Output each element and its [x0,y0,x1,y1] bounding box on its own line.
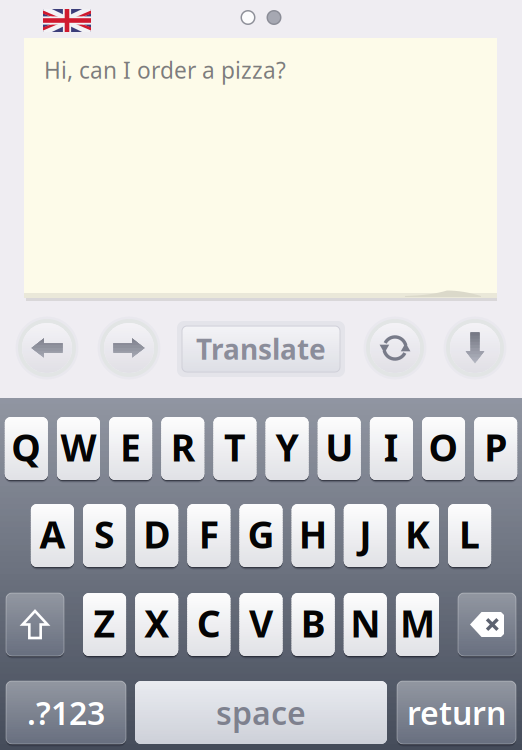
button[interactable]: Page 1 [237,6,259,28]
button[interactable]: .?123 [6,681,126,744]
button[interactable]: Page 2 [263,6,285,28]
button[interactable]: S [83,504,126,567]
staticText: C [197,598,221,648]
staticText: V [249,598,273,648]
staticText: B [301,598,326,648]
button[interactable]: Hide keyboard [443,316,507,380]
button[interactable]: D [135,504,178,567]
button[interactable]: Q [5,417,48,480]
button[interactable] [6,593,64,656]
staticText: W [60,422,96,472]
staticText: L [459,509,480,559]
staticText: Hi, can I order a pizza? [44,55,286,85]
button[interactable]: T [213,417,256,480]
button[interactable]: L [448,504,491,567]
staticText: E [120,422,141,472]
button[interactable]: M [396,593,439,656]
staticText: T [224,422,246,472]
staticText: P [484,422,507,472]
staticText: space [216,691,306,734]
button[interactable]: Previous [15,316,79,380]
staticText: O [428,422,458,472]
staticText: return [407,691,506,734]
button[interactable]: Swap languages [363,316,427,380]
button[interactable]: O [422,417,465,480]
button[interactable]: X [135,593,178,656]
button[interactable]: Y [266,417,309,480]
button[interactable]: B [292,593,335,656]
button[interactable]: G [239,504,282,567]
staticText: Y [276,422,299,472]
button[interactable]: W [57,417,100,480]
button[interactable]: U [318,417,361,480]
button[interactable]: E [109,417,152,480]
button[interactable]: return [397,681,516,744]
button[interactable]: Translate [176,320,346,378]
staticText: J [359,509,371,559]
button[interactable]: A [31,504,74,567]
staticText: G [247,509,274,559]
button[interactable]: I [370,417,413,480]
button[interactable]: R [161,417,204,480]
staticText: U [325,422,353,472]
staticText: Translate [196,330,326,368]
staticText: K [405,509,430,559]
staticText: D [143,509,170,559]
button[interactable]: F [187,504,230,567]
button[interactable]: space [135,681,387,744]
button[interactable] [458,593,516,656]
button[interactable]: C [187,593,230,656]
button[interactable]: V [239,593,282,656]
staticText: R [171,422,195,472]
staticText: .?123 [27,691,105,734]
button[interactable]: H [292,504,335,567]
staticText: X [144,598,169,648]
button[interactable]: J [344,504,387,567]
button[interactable]: N [344,593,387,656]
staticText: N [350,598,380,648]
staticText: Z [94,598,116,648]
button[interactable]: Next [97,316,161,380]
staticText: A [39,509,65,559]
staticText: H [299,509,328,559]
staticText: S [94,509,115,559]
button[interactable]: Z [83,593,126,656]
button[interactable]: P [474,417,517,480]
staticText: Q [11,422,41,472]
staticText: I [384,422,399,472]
staticText: M [400,598,435,648]
button[interactable]: K [396,504,439,567]
staticText: F [199,509,219,559]
